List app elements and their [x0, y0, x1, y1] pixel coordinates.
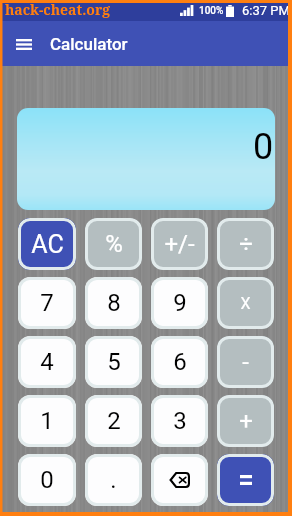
staticText: 2 [107, 407, 121, 435]
staticText: 0 [40, 466, 54, 494]
staticText: 7 [40, 289, 54, 317]
staticText: Calculator [50, 34, 128, 54]
button[interactable]: AC [18, 218, 76, 270]
button[interactable]: Backspace [151, 454, 208, 506]
staticText: 6:37 PM [242, 3, 290, 18]
button[interactable]: % [85, 218, 142, 270]
staticText: AC [31, 230, 64, 259]
button[interactable]: 8 [85, 277, 142, 329]
button[interactable]: ÷ [217, 218, 274, 270]
staticText: 0 [253, 126, 274, 168]
staticText: +/- [164, 230, 195, 258]
button[interactable]: 2 [85, 395, 142, 447]
button[interactable]: 0 [18, 454, 76, 506]
button[interactable] [217, 454, 274, 506]
button[interactable]: Open navigation menu [8, 28, 40, 60]
staticText: 4 [40, 348, 54, 376]
staticText: % [105, 230, 123, 258]
button[interactable]: . [85, 454, 142, 506]
staticText: 100% [199, 5, 224, 17]
staticText: + [239, 407, 253, 435]
button[interactable]: 9 [151, 277, 208, 329]
staticText: . [110, 466, 117, 494]
staticText: ÷ [239, 230, 253, 258]
staticText: - [242, 348, 249, 376]
staticText: X [240, 294, 251, 313]
button[interactable]: 0 [17, 108, 275, 210]
button[interactable]: 7 [18, 277, 76, 329]
button[interactable]: 5 [85, 336, 142, 388]
button[interactable]: - [217, 336, 274, 388]
staticText: 1 [40, 407, 54, 435]
button[interactable]: +/- [151, 218, 208, 270]
staticText: hack-cheat.org [5, 0, 111, 19]
button[interactable]: 6 [151, 336, 208, 388]
button[interactable]: 1 [18, 395, 76, 447]
staticText: 9 [173, 289, 187, 317]
button[interactable]: 4 [18, 336, 76, 388]
staticText: 3 [173, 407, 187, 435]
staticText: 6 [173, 348, 187, 376]
staticText: 5 [107, 348, 121, 376]
staticText: 8 [107, 289, 121, 317]
button[interactable]: + [217, 395, 274, 447]
button[interactable]: X [217, 277, 274, 329]
button[interactable]: 3 [151, 395, 208, 447]
